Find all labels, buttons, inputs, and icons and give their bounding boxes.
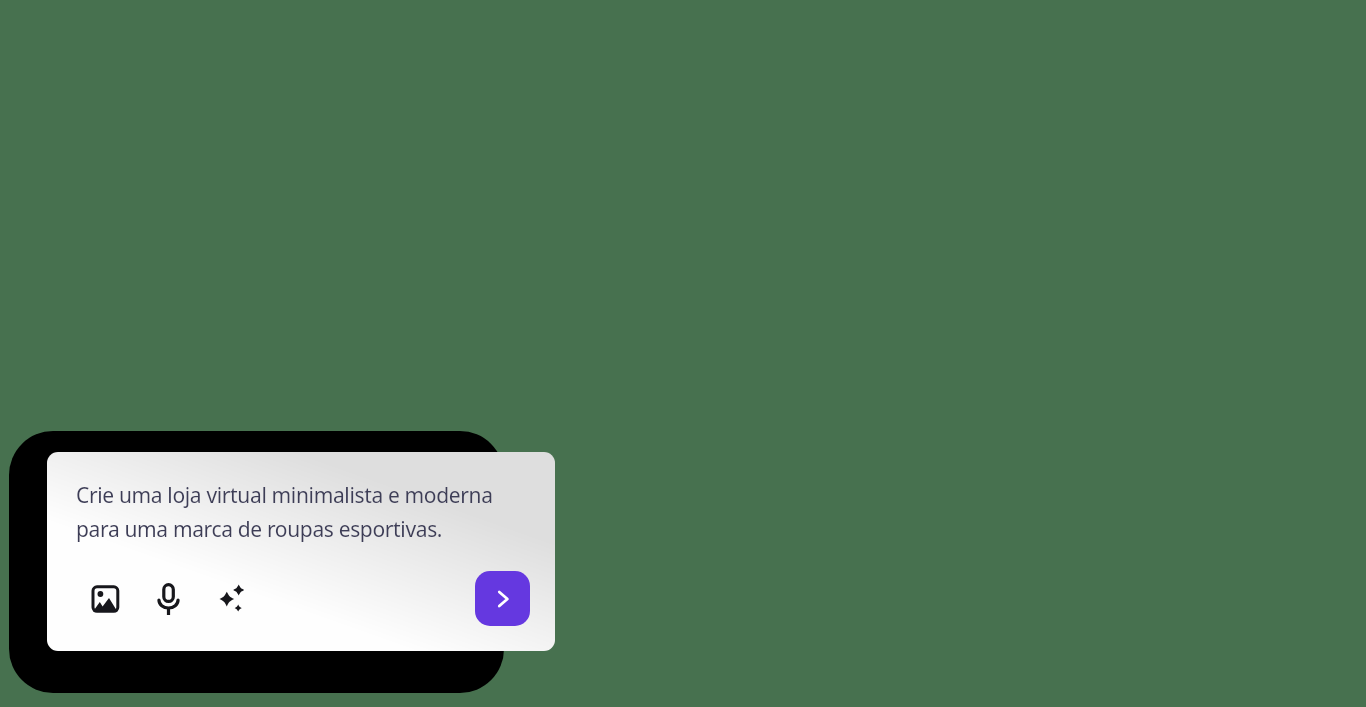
button[interactable]: Enhance prompt	[215, 582, 249, 616]
button[interactable]: Voice input	[152, 582, 186, 616]
button[interactable]: Crie uma loja virtual minimalista e mode…	[47, 452, 555, 651]
staticText: Crie uma loja virtual minimalista e mode…	[76, 481, 493, 543]
button[interactable]: Add image	[88, 582, 122, 616]
button[interactable]: Send prompt	[475, 571, 530, 626]
